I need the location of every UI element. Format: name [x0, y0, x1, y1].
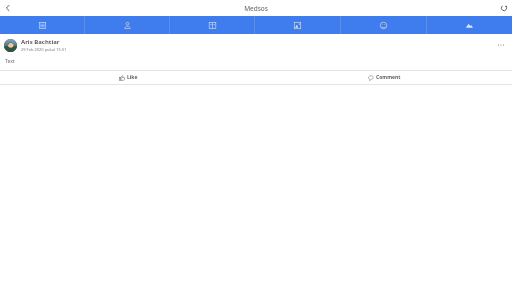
button[interactable]: Like	[0, 71, 256, 84]
button[interactable]: More options	[494, 38, 508, 52]
button[interactable]: More	[427, 16, 512, 34]
staticText: Comment	[376, 74, 401, 81]
button[interactable]: Book	[170, 16, 254, 34]
button[interactable]: Profile	[85, 16, 169, 34]
button[interactable]: Back	[0, 0, 16, 16]
button[interactable]: Emoji	[341, 16, 426, 34]
button[interactable]: Refresh	[496, 0, 512, 16]
button[interactable]: Feed	[0, 16, 84, 34]
staticText: Medsos	[244, 4, 268, 13]
staticText: Like	[127, 74, 138, 81]
staticText: 29 Feb 2020 pukul 15.51	[21, 47, 67, 52]
staticText: Text	[5, 58, 15, 65]
staticText: Aris Bachtiar	[21, 38, 60, 46]
button[interactable]: Photos	[255, 16, 340, 34]
button[interactable]: Comment	[256, 71, 512, 84]
